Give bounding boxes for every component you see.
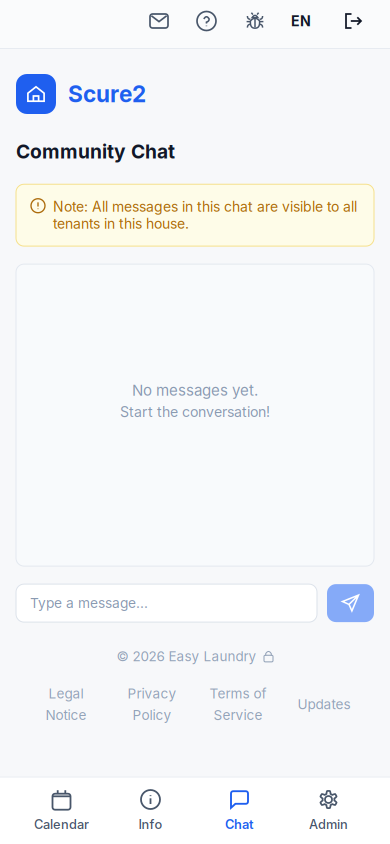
staticText: Chat (225, 816, 254, 832)
button[interactable]: EN (286, 6, 316, 36)
staticText: EN (291, 12, 311, 29)
staticText: Policy (132, 707, 171, 723)
button[interactable]: Terms of (200, 685, 276, 723)
staticText: Notice (45, 707, 86, 723)
staticText: Legal (48, 685, 83, 702)
staticText: © 2026 Easy Laundry (116, 648, 256, 664)
button[interactable]: Help (191, 6, 221, 36)
staticText: Start the conversation! (120, 403, 270, 420)
staticText: No messages yet. (132, 381, 258, 399)
button[interactable]: Log out (338, 6, 368, 36)
button[interactable]: Admin (284, 776, 373, 844)
staticText: Scure2 (68, 80, 146, 108)
staticText: Privacy (127, 685, 176, 702)
button[interactable]: Messages (144, 6, 174, 36)
button[interactable]: Report a bug (240, 6, 270, 36)
staticText: Terms of (209, 685, 266, 702)
button[interactable]: Chat (195, 776, 284, 844)
staticText: Admin (309, 816, 348, 832)
button[interactable]: Calendar (17, 776, 106, 844)
button[interactable]: Send (327, 584, 374, 622)
staticText: Calendar (34, 816, 89, 832)
button[interactable]: Privacy (114, 685, 190, 723)
staticText: Updates (297, 696, 350, 713)
button[interactable]: Info (106, 776, 195, 844)
staticText: Service (213, 707, 262, 723)
button[interactable]: Updates (286, 696, 362, 713)
staticText: Community Chat (16, 140, 175, 163)
staticText: Type a message... (30, 595, 148, 611)
staticText: Info (138, 816, 162, 832)
staticText: Note: All messages in this chat are visi… (53, 198, 357, 232)
button[interactable]: Legal (28, 685, 104, 723)
